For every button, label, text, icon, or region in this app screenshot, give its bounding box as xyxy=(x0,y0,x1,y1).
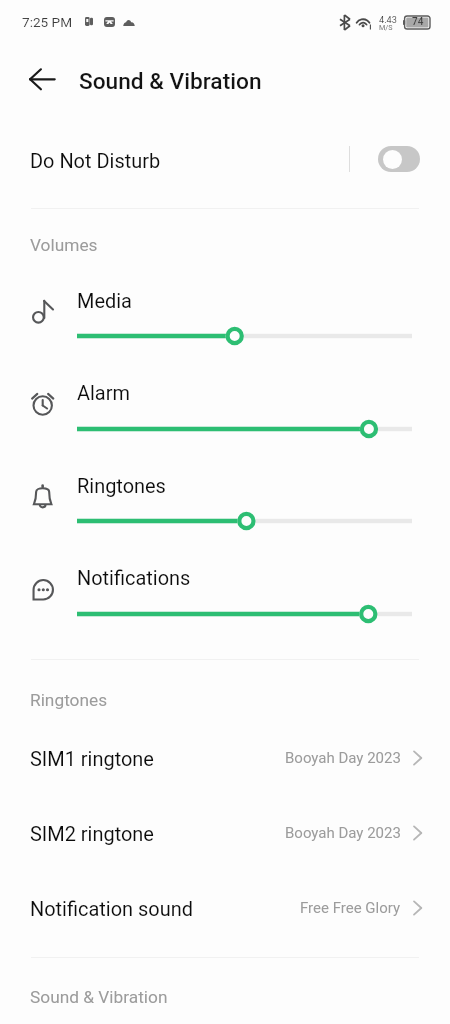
button[interactable] xyxy=(0,122,450,194)
staticText: SIM1 ringtone xyxy=(30,747,154,770)
button[interactable] xyxy=(0,796,450,870)
staticText: Sound & Vibration xyxy=(79,68,262,95)
button[interactable]: Do Not Disturb toggle xyxy=(378,146,420,172)
staticText: Ringtones xyxy=(30,690,108,710)
staticText: Alarm xyxy=(77,381,130,404)
button[interactable] xyxy=(0,543,450,635)
staticText: 7:25 PM xyxy=(22,14,73,30)
button[interactable]: Back xyxy=(18,61,66,97)
button[interactable] xyxy=(0,265,450,357)
staticText: 74 xyxy=(412,16,424,28)
staticText: Media xyxy=(77,289,132,312)
staticText: Do Not Disturb xyxy=(30,149,161,172)
staticText: Notifications xyxy=(77,566,191,589)
staticText: Volumes xyxy=(30,235,98,255)
staticText: M/S xyxy=(379,23,393,31)
staticText: 4.43 xyxy=(379,14,397,25)
button[interactable] xyxy=(0,721,450,795)
staticText: Booyah Day 2023 xyxy=(285,824,401,842)
staticText: SIM2 ringtone xyxy=(30,822,154,845)
button[interactable] xyxy=(0,871,450,945)
staticText: Booyah Day 2023 xyxy=(285,749,401,767)
staticText: Sound & Vibration xyxy=(30,987,168,1007)
staticText: Ringtones xyxy=(77,474,166,497)
staticText: Free Free Glory xyxy=(300,899,401,917)
button[interactable] xyxy=(0,450,450,542)
button[interactable] xyxy=(0,358,450,450)
staticText: Notification sound xyxy=(30,897,193,920)
